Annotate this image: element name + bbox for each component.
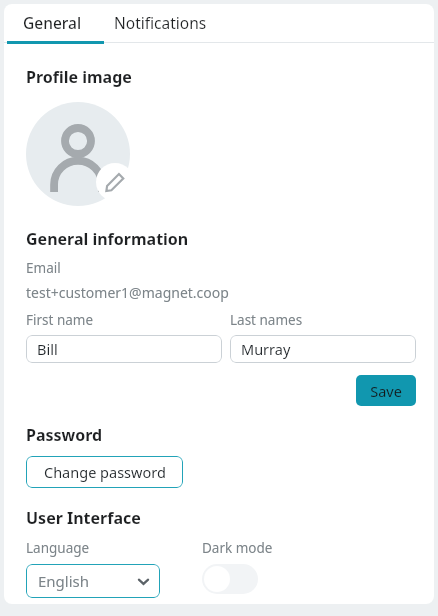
staticText: Profile image [26, 66, 132, 88]
staticText: General information [26, 228, 189, 250]
button[interactable]: General [4, 4, 101, 41]
staticText: Bill [37, 339, 58, 359]
staticText: Dark mode [202, 539, 273, 557]
button[interactable]: Murray [230, 335, 416, 363]
staticText: test+customer1@magnet.coop [26, 283, 229, 302]
staticText: First name [26, 311, 94, 329]
staticText: Last names [230, 311, 303, 329]
staticText: User Interface [26, 507, 141, 529]
button[interactable]: Change password [26, 456, 183, 488]
button[interactable]: Save [356, 375, 416, 406]
staticText: Language [26, 539, 90, 557]
staticText: General [23, 12, 82, 33]
staticText: Murray [241, 339, 291, 359]
staticText: Notifications [114, 12, 207, 33]
button[interactable]: Dark mode toggle [202, 564, 258, 594]
button[interactable]: Bill [26, 335, 222, 363]
button[interactable]: Edit profile image [26, 102, 130, 206]
staticText: Password [26, 424, 103, 446]
button[interactable]: Notifications [101, 4, 219, 41]
staticText: Save [370, 381, 402, 401]
button[interactable]: English [26, 564, 160, 598]
staticText: Change password [44, 462, 166, 482]
staticText: Email [26, 259, 61, 277]
staticText: English [38, 571, 90, 591]
